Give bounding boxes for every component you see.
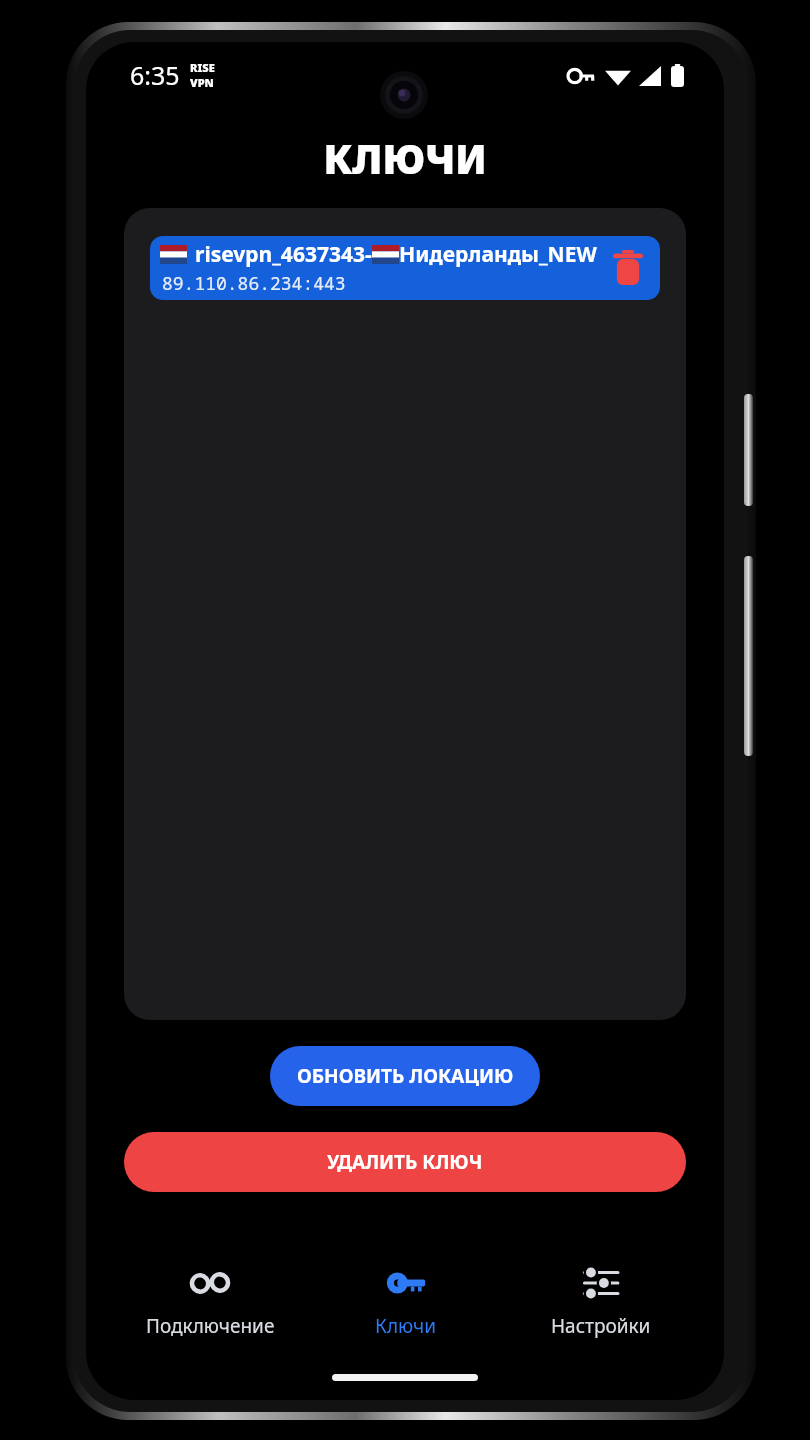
button[interactable]: ОБНОВИТЬ ЛОКАЦИЮ (270, 1046, 540, 1106)
staticText: Настройки (551, 1313, 651, 1339)
staticText: ОБНОВИТЬ ЛОКАЦИЮ (297, 1063, 514, 1089)
button[interactable]: Ключи (308, 1246, 503, 1354)
button[interactable]: УДАЛИТЬ КЛЮЧ (124, 1132, 686, 1192)
button[interactable]: Настройки (503, 1246, 698, 1354)
staticText: УДАЛИТЬ КЛЮЧ (327, 1149, 483, 1175)
staticText: risevpn_4637343- (195, 240, 372, 269)
other: Подключение (188, 1261, 232, 1305)
staticText: VPN (190, 75, 214, 90)
staticText: 89.110.86.234:443 (162, 271, 346, 296)
other: Ключи (384, 1261, 428, 1305)
button[interactable]: Удалить ключ (602, 242, 654, 294)
staticText: 6:35 (130, 58, 180, 92)
staticText: Подключение (146, 1313, 275, 1339)
button[interactable]: Подключение (112, 1246, 308, 1354)
other: Настройки (579, 1261, 623, 1305)
staticText: КЛЮЧИ (323, 131, 487, 185)
staticText: Нидерланды_NEW (399, 240, 597, 269)
staticText: RISE (190, 60, 215, 75)
button[interactable]: risevpn_4637343- (150, 236, 660, 300)
staticText: Ключи (375, 1313, 437, 1339)
